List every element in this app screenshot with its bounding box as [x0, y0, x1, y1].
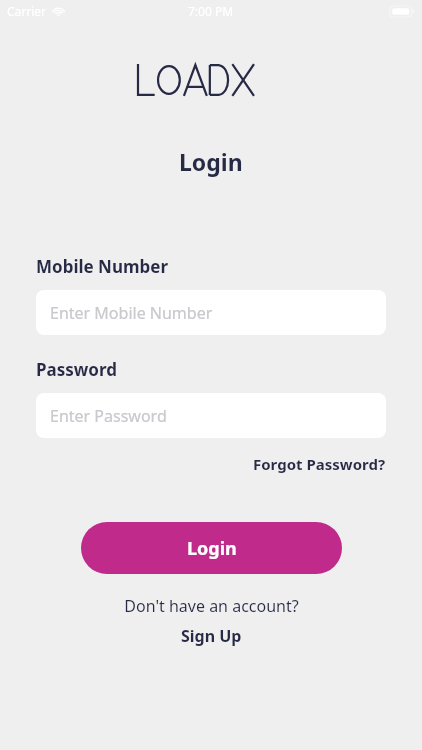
button[interactable]: Enter Password [36, 393, 386, 438]
button[interactable]: Enter Mobile Number [36, 290, 386, 335]
staticText: 7:00 PM [188, 3, 234, 19]
staticText: Enter Password [50, 405, 167, 427]
staticText: Don't have an account? [124, 595, 299, 617]
staticText: Enter Mobile Number [50, 302, 213, 324]
staticText: Login [179, 146, 243, 177]
staticText: Carrier [7, 3, 47, 19]
button[interactable]: Forgot Password? [253, 452, 386, 476]
button[interactable]: Sign Up [173, 623, 250, 649]
button[interactable]: Login [81, 522, 342, 574]
staticText: Forgot Password? [253, 454, 386, 474]
staticText: Password [36, 358, 117, 381]
staticText: Mobile Number [36, 255, 169, 278]
staticText: Sign Up [181, 625, 242, 647]
staticText: Login [187, 536, 237, 561]
